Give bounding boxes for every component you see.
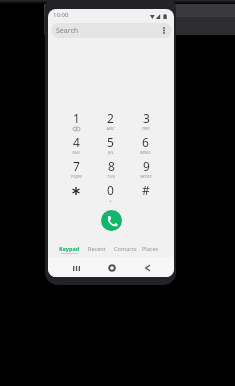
staticText: 0 [107, 182, 114, 198]
button[interactable]: Recents [70, 262, 82, 274]
button[interactable]: # [128, 182, 163, 206]
staticText: 1 [73, 110, 80, 126]
staticText: 5 [107, 134, 114, 150]
staticText: 3 [143, 110, 150, 126]
button[interactable]: 9 [128, 158, 163, 182]
button[interactable]: Places [136, 241, 164, 261]
button[interactable]: Recent [83, 241, 111, 261]
staticText: 2 [107, 110, 114, 126]
staticText: PQRS [71, 174, 82, 180]
staticText: Places [142, 245, 159, 252]
button[interactable]: 7 [59, 158, 93, 182]
staticText: 10:00 [53, 11, 69, 19]
button[interactable]: 3 [128, 110, 163, 134]
button[interactable]: 8 [93, 158, 128, 182]
button[interactable]: Contacts [111, 241, 139, 261]
staticText: TUV [107, 174, 115, 180]
button[interactable]: 2 [93, 110, 128, 134]
staticText: 8 [108, 158, 115, 174]
staticText: Contacts [114, 245, 137, 252]
staticText: 6 [142, 134, 149, 150]
staticText: WXYZ [140, 174, 152, 180]
staticText: 7 [73, 158, 80, 174]
button[interactable]: 1 [59, 110, 93, 134]
staticText: MNO [140, 150, 151, 156]
button[interactable]: Home [106, 262, 118, 274]
staticText: JKL [108, 150, 114, 156]
button[interactable] [59, 182, 93, 206]
staticText: 4 [73, 134, 80, 150]
staticText: ABC [106, 126, 115, 132]
button[interactable]: More options [158, 25, 169, 36]
button[interactable]: Call [101, 210, 122, 231]
button[interactable]: Search [51, 23, 172, 38]
button[interactable]: 6 [128, 134, 163, 158]
button[interactable]: 0 [93, 182, 128, 206]
staticText: GHI [72, 150, 80, 156]
button[interactable]: 4 [59, 134, 93, 158]
staticText: + [109, 198, 112, 204]
staticText: Search [56, 26, 79, 36]
staticText: DEF [142, 126, 150, 132]
button[interactable]: 5 [93, 134, 128, 158]
staticText: # [142, 182, 150, 198]
staticText: 9 [143, 158, 150, 174]
staticText: Recent [88, 245, 106, 252]
button[interactable]: Back [141, 262, 153, 274]
staticText: Keypad [59, 245, 80, 252]
button[interactable]: Keypad [55, 241, 83, 261]
